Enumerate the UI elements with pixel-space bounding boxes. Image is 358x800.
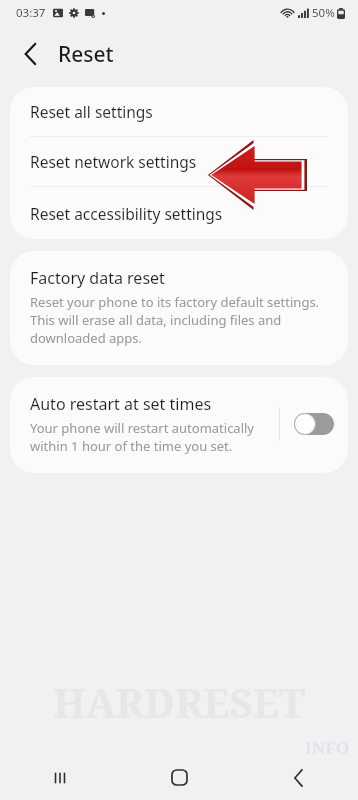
button[interactable]: Reset all settings — [10, 87, 348, 136]
staticText: Your phone will restart automatically wi… — [30, 419, 271, 455]
staticText: Reset your phone to its factory default … — [30, 293, 328, 347]
staticText: Reset — [58, 40, 114, 69]
button[interactable]: Factory data reset — [10, 251, 348, 365]
staticText: Reset accessibility settings — [30, 203, 223, 224]
button[interactable]: Reset network settings — [10, 137, 348, 186]
staticText: HARDRESET — [0, 675, 358, 729]
button[interactable]: Reset accessibility settings — [10, 187, 348, 239]
staticText: INFO — [305, 736, 350, 759]
button[interactable]: Back — [8, 32, 52, 76]
staticText: Auto restart at set times — [30, 393, 212, 415]
button[interactable]: Home — [120, 755, 239, 800]
staticText: Reset network settings — [30, 151, 197, 172]
button[interactable]: Recent apps — [0, 755, 120, 800]
staticText: 50% — [312, 5, 335, 21]
staticText: Reset all settings — [30, 101, 153, 122]
staticText: 03:37 — [16, 5, 46, 21]
button[interactable]: Auto restart at set times — [10, 377, 348, 473]
button[interactable]: Back — [239, 755, 358, 800]
staticText: Factory data reset — [30, 267, 165, 289]
button[interactable]: Auto restart at set times toggle — [294, 413, 334, 435]
